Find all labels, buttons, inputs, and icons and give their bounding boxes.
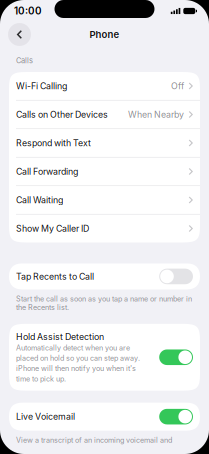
button[interactable]: Back <box>8 23 31 46</box>
button[interactable]: Show My Caller ID <box>9 214 200 242</box>
button[interactable]: Wi-Fi Calling <box>9 72 200 100</box>
staticText: Respond with Text <box>16 138 91 148</box>
staticText: Calls <box>16 56 33 65</box>
staticText: Tap Recents to Call <box>16 271 94 282</box>
staticText: Call Forwarding <box>16 166 78 177</box>
staticText: Wi-Fi Calling <box>16 81 67 91</box>
staticText: View a transcript of an incoming voicema… <box>16 436 172 444</box>
button[interactable]: Calls on Other Devices <box>9 100 200 128</box>
staticText: When Nearby <box>128 109 184 120</box>
staticText: Live Voicemail <box>16 411 75 422</box>
staticText: 10:00 <box>14 5 42 17</box>
staticText: Start the call as soon as you tap a name… <box>16 294 192 312</box>
staticText: Calls on Other Devices <box>16 109 108 120</box>
staticText: Off <box>171 81 184 91</box>
staticText: Hold Assist Detection <box>16 331 104 342</box>
button[interactable]: Respond with Text <box>9 129 200 157</box>
button[interactable]: Tap Recents to Call <box>9 263 200 289</box>
staticText: Phone <box>89 29 119 40</box>
button[interactable]: Call Waiting <box>9 186 200 214</box>
staticText: Automatically detect when you are placed… <box>16 343 140 383</box>
staticText: Show My Caller ID <box>16 223 89 234</box>
button[interactable]: Hold Assist Detection <box>9 324 200 391</box>
button[interactable]: Call Forwarding <box>9 157 200 185</box>
button[interactable]: Live Voicemail <box>9 403 200 431</box>
staticText: Call Waiting <box>16 195 63 205</box>
